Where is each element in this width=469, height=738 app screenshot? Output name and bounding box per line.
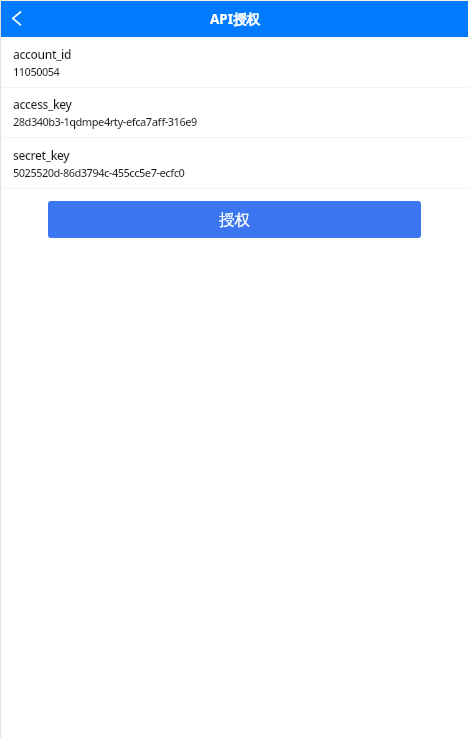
staticText: secret_key	[13, 147, 70, 163]
staticText: 授权	[219, 210, 250, 230]
button[interactable]: Back	[0, 1, 36, 37]
button[interactable]: access_key	[0, 87, 469, 137]
staticText: 11050054	[13, 64, 60, 79]
button[interactable]: account_id	[0, 37, 469, 87]
staticText: 28d340b3-1qdmpe4rty-efca7aff-316e9	[13, 114, 197, 129]
staticText: access_key	[13, 96, 72, 112]
staticText: 5025520d-86d3794c-455cc5e7-ecfc0	[13, 165, 185, 180]
button[interactable]: 授权	[48, 201, 421, 238]
staticText: account_id	[13, 46, 72, 62]
button[interactable]: secret_key	[0, 138, 469, 188]
staticText: API授权	[210, 10, 260, 28]
